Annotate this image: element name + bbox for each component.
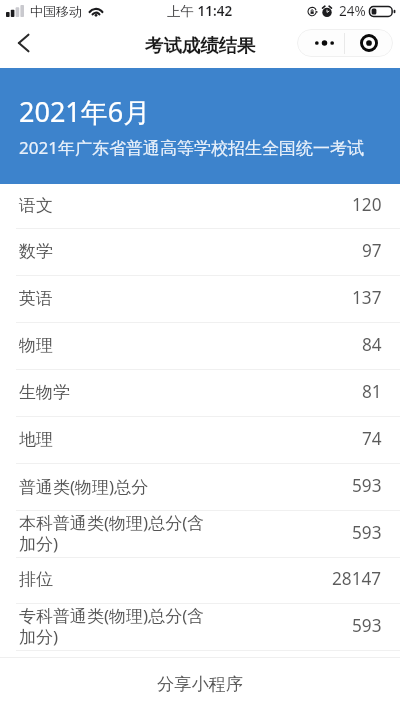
staticText: 97 [362, 239, 382, 262]
staticText: 专科普通类(物理)总分(含 加分) [19, 604, 205, 649]
button[interactable]: 排位 [0, 558, 400, 603]
staticText: 本科普通类(物理)总分(含 加分) [19, 511, 205, 556]
staticText: 74 [362, 427, 382, 450]
button[interactable]: 数学 [0, 229, 400, 275]
button[interactable]: 分享小程序 [0, 658, 400, 711]
staticText: 考试成绩结果 [145, 34, 256, 57]
button[interactable]: 英语 [0, 276, 400, 322]
staticText: 24% [339, 2, 366, 20]
button[interactable]: 语文 [0, 184, 400, 228]
staticText: 排位 [19, 569, 53, 590]
staticText: 81 [362, 380, 382, 403]
staticText: 英语 [19, 288, 53, 309]
button[interactable]: 专科普通类(物理)总分(含 加分) [0, 604, 400, 650]
staticText: 普通类(物理)总分 [19, 475, 149, 498]
button[interactable]: More [301, 29, 348, 57]
staticText: 28147 [332, 567, 382, 590]
staticText: 物理 [19, 335, 53, 356]
staticText: 2021年6月 [19, 93, 151, 130]
staticText: 137 [352, 286, 382, 309]
staticText: 2021年广东省普通高等学校招生全国统一考试 [19, 136, 364, 159]
button[interactable]: 本科普通类(物理)总分(含 加分) [0, 511, 400, 557]
staticText: 84 [362, 333, 382, 356]
staticText: 数学 [19, 241, 53, 262]
staticText: 语文 [19, 195, 53, 216]
staticText: 593 [352, 614, 382, 637]
staticText: 中国移动 [30, 3, 82, 19]
button[interactable]: Back [6, 26, 40, 60]
staticText: 上午 11:42 [167, 2, 233, 20]
staticText: 593 [352, 474, 382, 497]
button[interactable]: Close [345, 29, 393, 57]
staticText: 分享小程序 [157, 673, 243, 695]
button[interactable]: 物理 [0, 323, 400, 369]
staticText: 地理 [19, 429, 53, 450]
staticText: 120 [352, 193, 382, 216]
staticText: 593 [352, 521, 382, 544]
staticText: 生物学 [19, 382, 70, 403]
button[interactable]: 地理 [0, 417, 400, 463]
button[interactable]: 生物学 [0, 370, 400, 416]
button[interactable]: 普通类(物理)总分 [0, 464, 400, 510]
